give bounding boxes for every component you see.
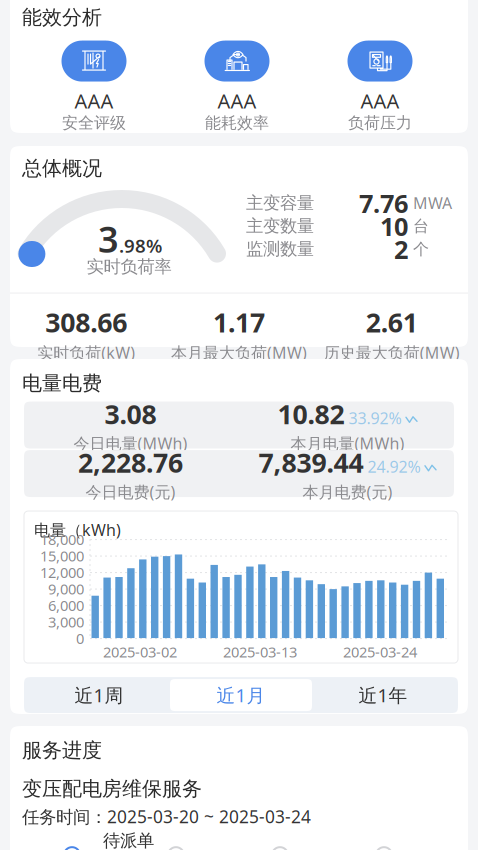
staticText: MWA bbox=[413, 192, 452, 214]
staticText: 总体概况 bbox=[22, 156, 102, 181]
staticText: 台 bbox=[413, 216, 429, 236]
staticText: 个 bbox=[413, 239, 429, 259]
staticText: AAA bbox=[360, 88, 399, 114]
staticText: 近1年 bbox=[358, 683, 407, 707]
button[interactable]: AAA bbox=[165, 41, 308, 133]
button[interactable]: 近1周 bbox=[28, 679, 170, 711]
staticText: 待派单 bbox=[103, 830, 154, 850]
staticText: 308.66 bbox=[45, 305, 127, 340]
staticText: .98% bbox=[119, 233, 162, 258]
staticText: 监测数量 bbox=[246, 238, 314, 260]
staticText: 历史最大负荷(MW) bbox=[324, 342, 460, 363]
staticText: 能效分析 bbox=[22, 5, 102, 30]
button[interactable]: 近1年 bbox=[312, 679, 454, 711]
staticText: 主变容量 bbox=[246, 192, 314, 214]
staticText: 本月电量(MWh) bbox=[290, 433, 404, 454]
staticText: 10 bbox=[380, 209, 408, 243]
staticText: 7.76 bbox=[359, 186, 408, 220]
staticText: 3.08 bbox=[104, 396, 156, 432]
staticText: 变压配电房维保服务 bbox=[22, 777, 202, 801]
staticText: 2025-03-24 bbox=[343, 642, 417, 662]
staticText: 近1月 bbox=[216, 683, 265, 707]
staticText: 33.92% bbox=[348, 407, 401, 429]
staticText: 服务进度 bbox=[22, 738, 102, 763]
staticText: 3 bbox=[98, 215, 119, 263]
staticText: 6,000 bbox=[48, 596, 84, 615]
staticText: 2025-03-13 bbox=[223, 642, 297, 662]
staticText: 本月最大负荷(MW) bbox=[171, 342, 307, 363]
staticText: 3,000 bbox=[48, 612, 84, 632]
button[interactable]: AAA bbox=[22, 41, 165, 133]
staticText: 9,000 bbox=[48, 579, 84, 599]
staticText: 安全评级 bbox=[62, 113, 126, 133]
staticText: 电量（kWh) bbox=[34, 519, 121, 540]
staticText: 任务时间：2025-03-20 ~ 2025-03-24 bbox=[22, 805, 311, 828]
staticText: 24.92% bbox=[367, 456, 420, 477]
staticText: 2 bbox=[394, 232, 408, 266]
staticText: 实时负荷(kW) bbox=[37, 342, 135, 363]
staticText: 0 bbox=[76, 629, 84, 648]
staticText: 主变数量 bbox=[246, 215, 314, 237]
button[interactable]: AAA bbox=[308, 41, 451, 133]
staticText: 2025-03-02 bbox=[103, 642, 177, 662]
staticText: 1.17 bbox=[213, 305, 265, 340]
staticText: 今日电量(MWh) bbox=[73, 433, 187, 454]
staticText: AAA bbox=[217, 88, 256, 114]
staticText: 近1周 bbox=[74, 683, 123, 707]
staticText: 电量电费 bbox=[22, 371, 102, 396]
button[interactable]: 近1月 bbox=[170, 679, 312, 711]
staticText: 能耗效率 bbox=[205, 113, 269, 133]
staticText: 2.61 bbox=[366, 305, 418, 340]
staticText: 18,000 bbox=[40, 530, 84, 549]
staticText: 实时负荷率 bbox=[86, 256, 171, 277]
staticText: 15,000 bbox=[40, 546, 84, 566]
staticText: 7,839.44 bbox=[258, 445, 363, 480]
staticText: 负荷压力 bbox=[348, 113, 412, 133]
staticText: 今日电费(元) bbox=[85, 481, 175, 502]
staticText: 2,228.76 bbox=[78, 445, 183, 480]
staticText: 本月电费(元) bbox=[302, 481, 392, 502]
staticText: 10.82 bbox=[277, 396, 344, 432]
staticText: 12,000 bbox=[40, 563, 84, 582]
staticText: AAA bbox=[74, 88, 113, 114]
